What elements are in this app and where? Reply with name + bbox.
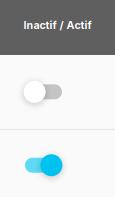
button[interactable]: Inactif	[0, 55, 115, 129]
staticText: Inactif / Actif	[23, 18, 91, 31]
button[interactable]: Actif	[0, 130, 115, 196]
